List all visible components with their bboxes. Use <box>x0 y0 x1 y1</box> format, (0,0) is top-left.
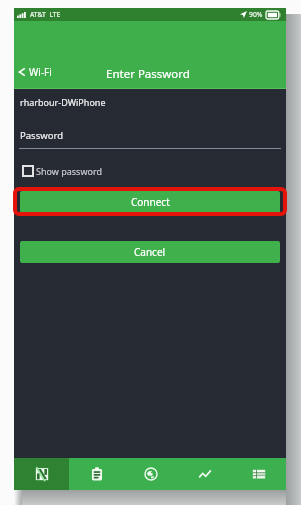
staticText: Connect <box>131 195 170 209</box>
staticText: Wi-Fi <box>29 65 52 79</box>
staticText: Cancel <box>134 245 166 259</box>
button[interactable]: Wi-Fi <box>18 65 52 79</box>
button[interactable]: Statistics <box>178 458 232 490</box>
staticText: AT&T LTE <box>30 10 61 19</box>
button[interactable]: Browser <box>124 458 178 490</box>
staticText: Enter Password <box>106 66 190 82</box>
button[interactable]: Home <box>14 458 69 490</box>
button[interactable]: Cancel <box>20 241 280 263</box>
button[interactable]: Documents <box>69 458 124 490</box>
button[interactable]: Table <box>232 458 286 490</box>
staticText: Show password <box>36 165 102 177</box>
button[interactable]: Connect <box>20 191 280 213</box>
button[interactable]: Show password <box>22 165 102 177</box>
staticText: rharbour-DWiPhone <box>20 96 106 108</box>
staticText: 90% <box>249 10 263 19</box>
staticText: Password <box>20 129 63 142</box>
